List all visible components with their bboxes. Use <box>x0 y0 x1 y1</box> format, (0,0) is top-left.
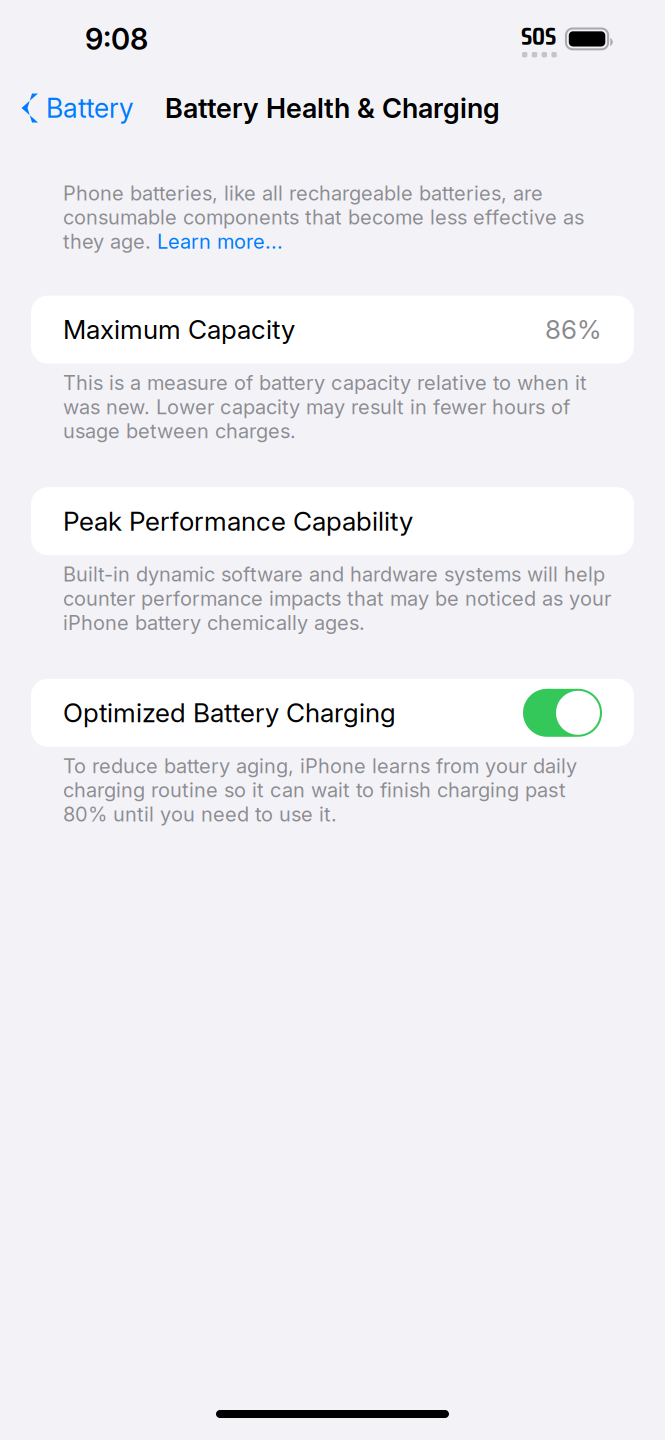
staticText: 9:08 <box>85 21 148 57</box>
button[interactable]: Peak Performance Capability <box>31 487 634 555</box>
button[interactable]: Optimized Battery Charging <box>523 689 602 737</box>
staticText: Optimized Battery Charging <box>63 697 396 729</box>
staticText: Battery <box>46 92 134 124</box>
staticText: 86% <box>545 314 602 345</box>
staticText: Phone batteries, like all rechargeable b… <box>63 181 584 254</box>
staticText: Maximum Capacity <box>63 314 295 345</box>
button[interactable]: Maximum Capacity <box>31 296 634 364</box>
button[interactable]: Battery <box>0 84 134 132</box>
staticText: SOS <box>521 16 556 56</box>
button[interactable]: Optimized Battery Charging <box>31 679 634 747</box>
staticText: Battery Health & Charging <box>165 91 500 124</box>
staticText: Built-in dynamic software and hardware s… <box>63 562 611 635</box>
staticText: To reduce battery aging, iPhone learns f… <box>63 754 577 826</box>
staticText: Peak Performance Capability <box>63 505 413 537</box>
staticText: This is a measure of battery capacity re… <box>63 371 587 443</box>
